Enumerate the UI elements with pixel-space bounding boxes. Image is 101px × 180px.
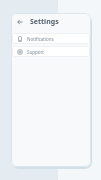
button[interactable]: Support xyxy=(12,46,90,57)
button[interactable]: Notifications xyxy=(12,33,90,44)
staticText: Settings xyxy=(30,17,59,27)
staticText: Notifications xyxy=(27,36,54,42)
staticText: Support xyxy=(27,49,44,55)
button[interactable]: Back xyxy=(14,16,26,28)
